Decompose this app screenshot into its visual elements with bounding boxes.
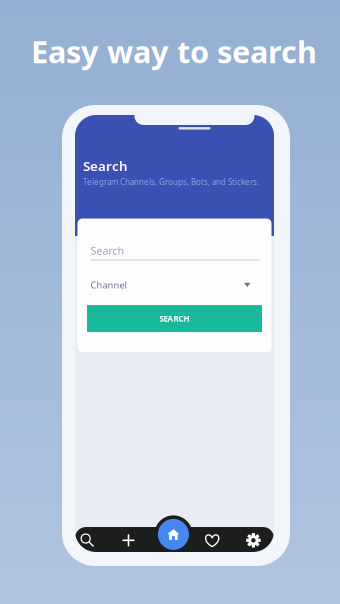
button[interactable]: SEARCH [87, 305, 262, 332]
button[interactable]: Home [153, 514, 193, 554]
staticText: Telegram Channels, Groups, Bots, and Sti… [83, 177, 259, 187]
button[interactable]: Favorites [195, 524, 229, 557]
staticText: SEARCH [159, 313, 189, 324]
staticText: Search [90, 243, 124, 258]
button[interactable]: Search [70, 524, 104, 557]
staticText: Search [83, 157, 128, 175]
staticText: Easy way to search [31, 31, 317, 72]
button[interactable]: Settings [236, 524, 270, 557]
staticText: Channel [90, 279, 126, 291]
button[interactable]: Add [111, 524, 145, 557]
